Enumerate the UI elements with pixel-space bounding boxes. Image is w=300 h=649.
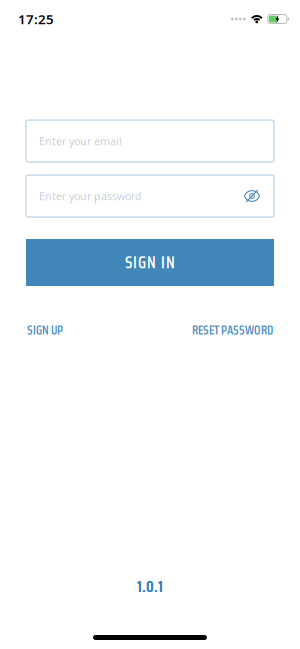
button[interactable]: SIGN UP	[27, 320, 63, 340]
staticText: SIGN UP	[27, 320, 63, 340]
button[interactable]: Enter your password	[26, 175, 274, 217]
button[interactable]: Enter your email	[26, 120, 274, 162]
button[interactable]: Show password	[244, 189, 274, 202]
staticText: 1.0.1	[137, 574, 163, 599]
staticText: S I G N I N	[125, 249, 175, 276]
staticText: 17:25	[18, 10, 54, 28]
staticText: RESET PASSWORD	[192, 320, 273, 340]
staticText: Enter your password	[39, 189, 142, 203]
staticText: Enter your email	[39, 134, 122, 148]
button[interactable]: RESET PASSWORD	[192, 320, 273, 340]
button[interactable]: S I G N I N	[26, 239, 274, 286]
